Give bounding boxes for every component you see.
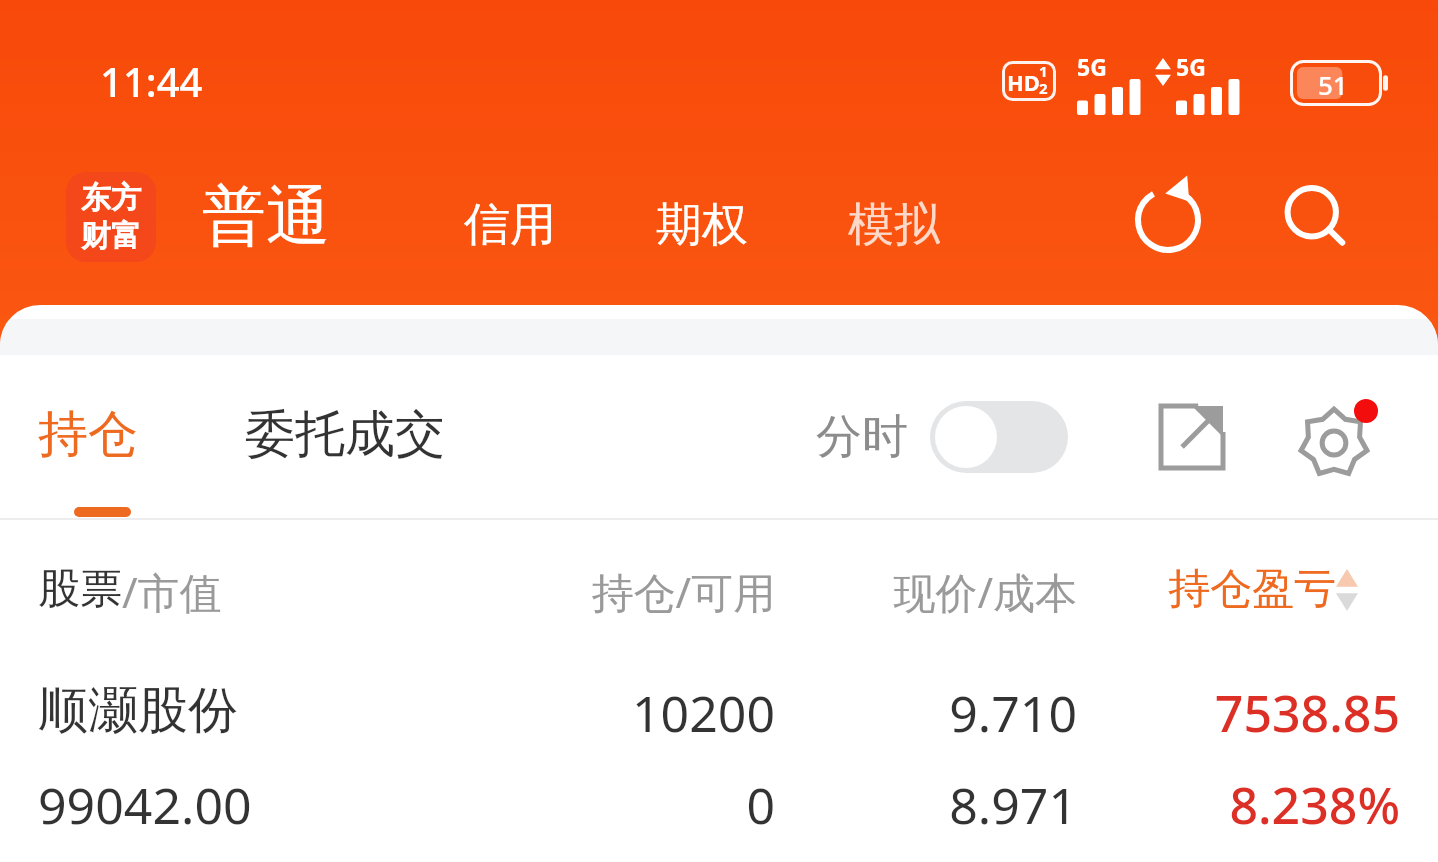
staticText: 5G bbox=[1176, 51, 1206, 82]
button[interactable]: 模拟 bbox=[848, 196, 940, 254]
staticText: /市值 bbox=[122, 563, 222, 620]
button[interactable]: 普通 bbox=[202, 176, 330, 257]
button[interactable]: 顺灏股份 bbox=[0, 673, 1438, 861]
staticText: 51 bbox=[1318, 67, 1348, 102]
staticText: 8.971 bbox=[0, 771, 1077, 839]
staticText: 期权 bbox=[656, 196, 748, 254]
button[interactable]: 信用 bbox=[464, 196, 556, 254]
staticText: 普通 bbox=[202, 176, 330, 257]
button[interactable]: 分时 bbox=[816, 401, 1068, 473]
staticText: 持仓 bbox=[38, 403, 138, 466]
staticText: 7538.85 bbox=[0, 679, 1400, 747]
button[interactable]: 持仓 bbox=[38, 403, 138, 466]
button[interactable]: 持仓盈亏 bbox=[1168, 563, 1358, 616]
staticText: 顺灏股份 bbox=[38, 679, 238, 742]
button[interactable]: Refresh bbox=[1128, 180, 1208, 260]
staticText: 10200 bbox=[0, 679, 775, 747]
button[interactable]: Settings bbox=[1288, 391, 1382, 485]
staticText: 持仓盈亏 bbox=[1168, 563, 1336, 616]
other: 分时 toggle bbox=[930, 401, 1068, 473]
staticText: 股票 bbox=[38, 563, 122, 616]
staticText: 9.710 bbox=[0, 679, 1077, 747]
staticText: 8.238% bbox=[0, 771, 1400, 839]
staticText: 5G bbox=[1077, 51, 1107, 82]
staticText: 现价/成本 bbox=[0, 563, 1077, 620]
staticText: HD bbox=[1007, 67, 1040, 97]
staticText: 东方 bbox=[81, 179, 141, 217]
button[interactable]: 期权 bbox=[656, 196, 748, 254]
staticText: 11:44 bbox=[100, 54, 203, 108]
staticText: 信用 bbox=[464, 196, 556, 254]
staticText: 2 bbox=[1039, 78, 1048, 98]
staticText: 持仓/可用 bbox=[0, 563, 775, 620]
staticText: 0 bbox=[0, 771, 775, 839]
button[interactable]: 东方财富 bbox=[66, 172, 156, 262]
button[interactable]: 委托成交 bbox=[245, 403, 445, 466]
staticText: 委托成交 bbox=[245, 403, 445, 466]
staticText: 模拟 bbox=[848, 196, 940, 254]
staticText: 分时 bbox=[816, 408, 908, 466]
staticText: 1 bbox=[1039, 61, 1048, 81]
staticText: 99042.00 bbox=[38, 771, 252, 839]
button[interactable]: Open in browser bbox=[1148, 393, 1236, 481]
button[interactable]: Search bbox=[1278, 180, 1358, 260]
staticText: 财富 bbox=[81, 217, 141, 255]
